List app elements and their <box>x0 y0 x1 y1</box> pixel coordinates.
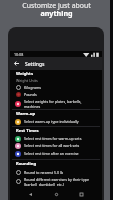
staticText: Select rest times for all work sets <box>24 143 80 148</box>
button[interactable]: Select warm-up type individually <box>10 118 102 125</box>
staticText: Weight Units <box>16 78 38 83</box>
button[interactable]: Kilograms <box>10 84 102 91</box>
button[interactable]: Pounds <box>10 91 102 98</box>
staticText: Select weights for plates, barbells, <box>24 99 82 104</box>
button[interactable]: Select rest times for all work sets <box>10 142 102 149</box>
button[interactable]: Select rest times for warm-up sets <box>10 135 102 142</box>
button[interactable]: Home <box>52 190 61 199</box>
staticText: Rounding <box>16 161 37 167</box>
staticText: Select rest time after an exercise <box>24 151 79 156</box>
staticText: Select warm-up type individually <box>24 119 79 124</box>
staticText: Warm-up <box>16 111 36 117</box>
staticText: Rest Times <box>16 128 39 134</box>
staticText: anything <box>40 8 73 18</box>
staticText: Round different exercises by their type <box>24 177 89 182</box>
staticText: (barbell, dumbbell, etc.) <box>24 182 64 186</box>
staticText: machines <box>24 104 41 108</box>
staticText: Weights <box>16 71 34 77</box>
button[interactable]: Back <box>26 190 35 199</box>
staticText: Kilograms <box>24 85 41 90</box>
staticText: Customize just about <box>22 1 91 10</box>
staticText: Pounds <box>24 92 37 97</box>
staticText: Settings <box>25 61 45 68</box>
button[interactable]: Round different exercises by their type <box>10 177 102 186</box>
button[interactable]: Recents <box>77 190 86 199</box>
button[interactable]: Back <box>12 59 21 68</box>
staticText: 10:08 <box>14 52 24 57</box>
staticText: Select rest times for warm-up sets <box>24 136 82 141</box>
button[interactable]: Round to nearest 5.0 lb <box>10 169 102 176</box>
button[interactable]: Select weights for plates, barbells, <box>10 99 102 108</box>
staticText: Round to nearest 5.0 lb <box>24 170 64 175</box>
button[interactable]: Select rest time after an exercise <box>10 150 102 157</box>
